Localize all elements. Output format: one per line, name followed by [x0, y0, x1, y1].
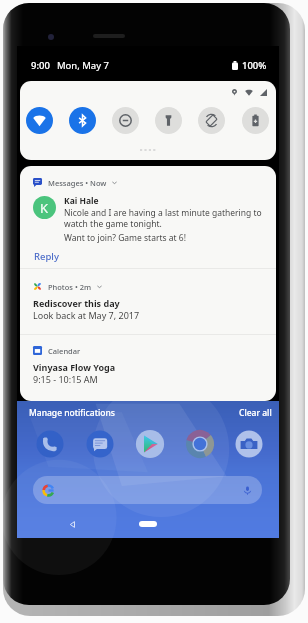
staticText: 100%	[242, 59, 267, 72]
button[interactable]: Do not disturb	[112, 107, 139, 134]
staticText: Calendar	[48, 346, 81, 356]
staticText: Want to join? Game starts at 6!	[64, 232, 187, 244]
staticText: Nicole and I are having a last minute ga…	[64, 207, 264, 229]
button[interactable]: Messages • Now	[20, 166, 276, 268]
button[interactable]: Bluetooth	[69, 107, 96, 134]
staticText: Reply	[34, 250, 59, 263]
staticText: Rediscover this day	[33, 297, 120, 309]
button[interactable]: Messages	[85, 429, 115, 459]
button[interactable]: Battery saver	[242, 107, 269, 134]
staticText: Manage notifications	[29, 407, 115, 419]
staticText: Mon, May 7	[57, 59, 109, 72]
staticText: Kai Hale	[64, 195, 99, 207]
button[interactable]: Back	[64, 516, 80, 532]
button[interactable]: Auto-rotate	[198, 107, 225, 134]
staticText: K	[40, 199, 49, 217]
button[interactable]: Reply	[31, 247, 62, 266]
staticText: 9:00	[31, 59, 50, 72]
button[interactable]: Play Store	[135, 429, 165, 459]
button[interactable]: Wi-Fi	[26, 107, 53, 134]
button[interactable]: Search	[33, 476, 262, 504]
staticText: Photos • 2m	[48, 282, 92, 292]
button[interactable]: Flashlight	[155, 107, 182, 134]
button[interactable]: Manage notifications	[24, 404, 120, 422]
staticText: 9:15 - 10:15 AM	[33, 373, 98, 385]
button[interactable]: Home	[139, 521, 157, 527]
button[interactable]: Phone	[35, 429, 65, 459]
staticText: Look back at May 7, 2017	[33, 309, 140, 321]
button[interactable]: Chrome	[185, 429, 215, 459]
button[interactable]: Clear all	[234, 404, 277, 422]
button[interactable]: Calendar	[20, 335, 276, 401]
staticText: Vinyasa Flow Yoga	[33, 361, 116, 373]
staticText: Clear all	[239, 407, 272, 419]
staticText: Messages • Now	[48, 178, 107, 188]
button[interactable]: Photos • 2m	[20, 269, 276, 334]
button[interactable]: Camera	[234, 429, 264, 459]
